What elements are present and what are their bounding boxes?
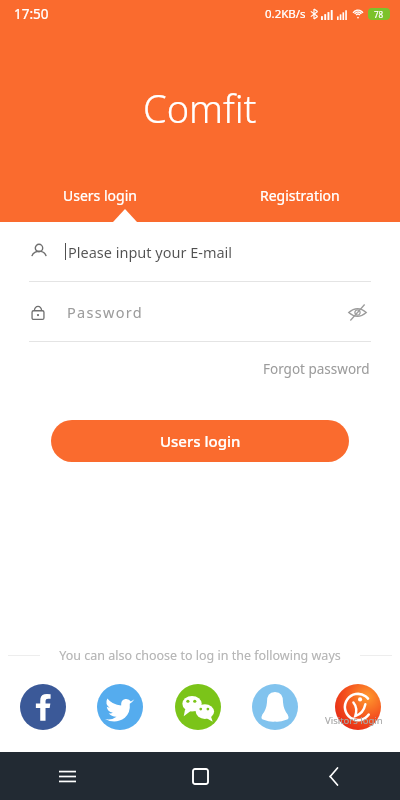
- staticText: Forgot password: [263, 360, 370, 378]
- button[interactable]: Users login: [0, 186, 200, 216]
- button[interactable]: Users login: [51, 420, 349, 462]
- button[interactable]: Recent apps: [0, 752, 134, 800]
- button[interactable]: Facebook login: [20, 684, 66, 730]
- staticText: You can also choose to log in the follow…: [40, 647, 360, 664]
- staticText: Users login: [160, 431, 241, 451]
- button[interactable]: Forgot password: [259, 356, 374, 382]
- button[interactable]: Back: [267, 752, 400, 800]
- staticText: Users login: [63, 186, 137, 205]
- staticText: Password: [67, 302, 143, 322]
- button[interactable]: Twitter login: [97, 684, 143, 730]
- staticText: 0.2KB/s: [265, 6, 306, 22]
- staticText: 78: [374, 9, 384, 20]
- staticText: Please input your E-mail: [68, 242, 233, 262]
- button[interactable]: Show password: [343, 298, 371, 326]
- button[interactable]: QQ login: [252, 684, 298, 730]
- staticText: Visitors login: [325, 714, 383, 727]
- button[interactable]: Please input your E-mail: [29, 222, 371, 281]
- button[interactable]: WeChat login: [175, 684, 221, 730]
- button[interactable]: Visitors login: [335, 684, 381, 730]
- staticText: Comfit: [143, 82, 257, 134]
- staticText: 17:50: [14, 5, 49, 23]
- staticText: Registration: [260, 186, 340, 205]
- button[interactable]: Home: [134, 752, 267, 800]
- button[interactable]: Registration: [200, 186, 400, 216]
